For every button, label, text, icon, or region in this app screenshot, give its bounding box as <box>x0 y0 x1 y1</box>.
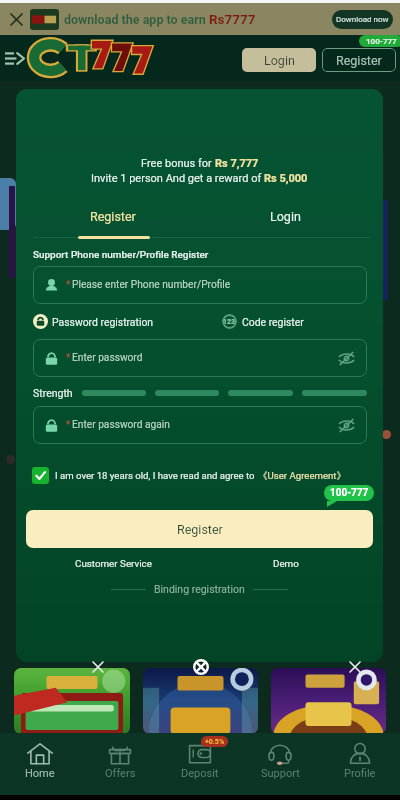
button[interactable]: Close promo <box>90 659 106 675</box>
staticText: Rs 5,000 <box>264 172 308 185</box>
staticText: Binding registration <box>154 583 245 595</box>
button[interactable]: Customer Service <box>27 555 199 572</box>
staticText: Enter password again <box>72 419 170 431</box>
button[interactable]: Show password <box>337 416 356 435</box>
button[interactable] <box>271 668 386 734</box>
button[interactable]: Register <box>322 48 396 72</box>
button[interactable]: * <box>33 266 367 304</box>
staticText: Register <box>90 209 136 224</box>
staticText: Deposit <box>181 767 219 780</box>
staticText: Password registration <box>52 316 154 328</box>
button[interactable]: Support <box>240 733 320 795</box>
staticText: * <box>66 352 71 364</box>
button[interactable]: Close promo <box>193 659 209 675</box>
staticText: Register <box>177 522 223 537</box>
staticText: Free bonus for <box>141 157 215 170</box>
staticText: +0.5% <box>205 738 225 746</box>
staticText: Rs 7,777 <box>215 157 259 170</box>
staticText: I am over 18 years old, I have read and … <box>55 470 255 481</box>
button[interactable]: Deposit <box>160 733 240 795</box>
staticText: 《User Agreement》 <box>258 470 346 482</box>
button[interactable]: Login <box>242 48 316 72</box>
staticText: Rs7777 <box>209 11 256 27</box>
staticText: Please enter Phone number/Profile <box>72 279 231 291</box>
staticText: Demo <box>273 558 299 569</box>
staticText: 100-777 <box>330 487 369 499</box>
button[interactable] <box>14 668 130 734</box>
button[interactable]: Download now <box>332 10 393 29</box>
staticText: Login <box>270 209 301 224</box>
button[interactable]: Menu <box>3 47 25 69</box>
button[interactable]: Profile <box>320 733 400 795</box>
staticText: Offers <box>105 767 136 780</box>
staticText: Home <box>25 767 55 780</box>
staticText: download the app to earn <box>64 12 209 27</box>
button[interactable]: Login <box>199 197 372 235</box>
staticText: Support Phone number/Profile Register <box>33 249 209 261</box>
staticText: Support <box>261 767 300 780</box>
staticText: Customer Service <box>75 558 152 569</box>
staticText: 123 <box>223 318 236 326</box>
staticText: Strength <box>33 387 73 399</box>
staticText: 100-777 <box>366 37 397 46</box>
staticText: Code register <box>242 316 304 328</box>
button[interactable]: Agree to terms <box>32 467 49 484</box>
button[interactable]: Register <box>27 197 199 235</box>
button[interactable]: Register <box>26 510 373 548</box>
staticText: Invite 1 person And get a reward of <box>91 172 264 185</box>
staticText: Login <box>264 53 295 68</box>
staticText: Profile <box>344 767 376 780</box>
staticText: * <box>66 279 71 291</box>
button[interactable]: Demo <box>199 555 372 572</box>
staticText: * <box>66 419 71 431</box>
button[interactable]: * <box>33 339 367 377</box>
staticText: Register <box>336 53 382 68</box>
button[interactable]: Close banner <box>6 9 26 29</box>
button[interactable]: * <box>33 406 367 444</box>
button[interactable]: Offers <box>80 733 160 795</box>
staticText: Enter password <box>72 352 143 364</box>
button[interactable] <box>143 668 258 734</box>
staticText: Download now <box>336 15 389 24</box>
button[interactable]: Show password <box>337 349 356 368</box>
button[interactable]: Close promo <box>347 659 363 675</box>
button[interactable]: Home <box>0 733 80 795</box>
